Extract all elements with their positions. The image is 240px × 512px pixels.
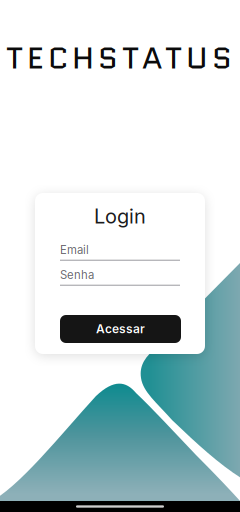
- staticText: Senha: [60, 268, 94, 282]
- button[interactable]: Acessar: [60, 315, 181, 343]
- staticText: Acessar: [96, 322, 145, 336]
- staticText: Login: [94, 204, 146, 228]
- staticText: TECHSTATUS: [6, 36, 232, 80]
- staticText: Email: [60, 243, 89, 257]
